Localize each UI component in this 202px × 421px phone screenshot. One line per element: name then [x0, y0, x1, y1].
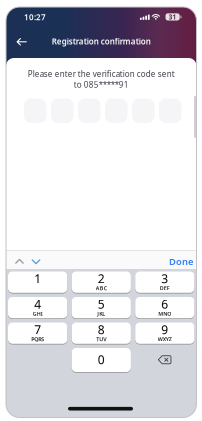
staticText: GHI — [33, 310, 43, 317]
button[interactable]: 6 — [135, 297, 194, 318]
button[interactable]: 0 — [72, 348, 131, 372]
button[interactable]: 2 — [72, 271, 131, 293]
staticText: 0 — [98, 352, 105, 367]
staticText: 7 — [34, 322, 41, 338]
staticText: Registration confirmation — [52, 36, 151, 47]
button[interactable]: Done — [169, 255, 193, 268]
staticText: 31 — [169, 12, 177, 21]
staticText: 6 — [161, 296, 168, 312]
staticText: 10:27 — [24, 12, 46, 22]
button[interactable]: 4 — [8, 297, 67, 318]
staticText: Done — [169, 255, 193, 268]
staticText: 2 — [98, 271, 105, 287]
button[interactable]: Verification code — [24, 98, 181, 123]
staticText: to 085*****91 — [74, 79, 129, 90]
staticText: 1 — [34, 271, 41, 287]
button[interactable]: 5 — [72, 297, 131, 318]
button[interactable]: 9 — [135, 322, 194, 344]
staticText: PQRS — [31, 336, 44, 343]
button[interactable]: Previous field — [14, 258, 24, 264]
staticText: 4 — [34, 296, 41, 312]
staticText: 8 — [98, 322, 105, 338]
button[interactable]: Delete — [158, 355, 172, 365]
staticText: TUV — [96, 336, 106, 343]
button[interactable]: 3 — [135, 271, 194, 293]
staticText: 5 — [98, 296, 105, 312]
staticText: 3 — [161, 271, 168, 287]
button[interactable]: 1 — [8, 271, 67, 293]
button[interactable]: Next field — [31, 259, 41, 265]
button[interactable]: 7 — [8, 322, 67, 344]
staticText: 9 — [161, 322, 168, 338]
button[interactable]: Back — [15, 37, 27, 47]
staticText: JKL — [97, 310, 105, 317]
staticText: DEF — [160, 285, 170, 292]
staticText: MNO — [158, 310, 171, 317]
staticText: ABC — [96, 285, 107, 292]
button[interactable]: 8 — [72, 322, 131, 344]
staticText: WXYZ — [158, 336, 172, 343]
staticText: Please enter the verification code sent — [28, 68, 175, 79]
